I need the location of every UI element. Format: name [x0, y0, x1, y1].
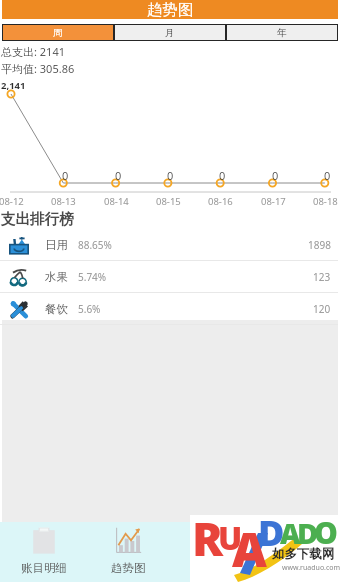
staticText: R: [192, 507, 224, 570]
staticText: 08-18: [313, 195, 338, 208]
staticText: U: [218, 516, 243, 560]
staticText: 0: [272, 168, 279, 183]
staticText: A: [280, 514, 301, 552]
staticText: 0: [219, 168, 226, 183]
staticText: 0: [115, 168, 122, 183]
staticText: D: [297, 513, 319, 552]
staticText: 0: [62, 168, 69, 183]
staticText: 水果: [45, 270, 68, 284]
staticText: 周: [53, 27, 63, 39]
staticText: 120: [313, 302, 331, 316]
staticText: 餐饮: [45, 302, 68, 316]
staticText: 趋势图: [147, 0, 194, 19]
button[interactable]: 月: [115, 25, 225, 40]
staticText: 总支出: 2141: [1, 44, 65, 59]
staticText: 趋势图: [111, 561, 146, 575]
button[interactable]: 趋势图: [86, 522, 170, 582]
button[interactable]: 日用: [9, 229, 331, 260]
staticText: 账目明细: [21, 561, 67, 575]
staticText: 08-12: [0, 195, 24, 208]
staticText: 88.65%: [78, 238, 112, 252]
staticText: D: [258, 508, 285, 557]
staticText: 5.74%: [78, 270, 107, 284]
staticText: 年: [277, 27, 287, 39]
button[interactable]: 年: [227, 25, 337, 40]
button[interactable]: 周: [3, 25, 113, 40]
button[interactable]: 水果: [9, 261, 331, 292]
staticText: 08-15: [156, 195, 181, 208]
staticText: 1898: [308, 238, 331, 252]
staticText: 支出排行榜: [1, 210, 74, 228]
staticText: 08-14: [104, 195, 129, 208]
staticText: 08-16: [208, 195, 233, 208]
staticText: 123: [313, 270, 331, 284]
staticText: 08-17: [261, 195, 286, 208]
staticText: 2,141: [1, 79, 26, 92]
button[interactable]: 账目明细: [2, 522, 86, 582]
button[interactable]: 餐饮: [9, 293, 331, 324]
staticText: 08-13: [51, 195, 76, 208]
staticText: 平均值: 305.86: [1, 61, 75, 76]
staticText: 0: [167, 168, 174, 183]
staticText: www.ruaduo.com: [282, 563, 341, 573]
staticText: 月: [165, 27, 175, 39]
staticText: 0: [324, 168, 331, 183]
staticText: A: [232, 516, 267, 581]
staticText: 如多下载网: [272, 546, 335, 562]
staticText: 5.6%: [78, 302, 101, 316]
staticText: 日用: [45, 238, 68, 252]
staticText: O: [314, 512, 338, 553]
